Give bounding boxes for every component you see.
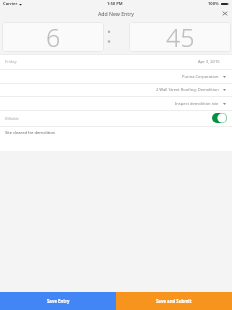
staticText: Friday <box>5 59 17 65</box>
button[interactable]: Purina Corporation <box>0 70 232 83</box>
staticText: Inspect demolition site <box>175 101 219 107</box>
button[interactable]: 45 <box>129 22 231 52</box>
button[interactable]: Billable <box>0 111 232 126</box>
staticText: 6 <box>46 22 61 50</box>
staticText: 45 <box>166 22 195 50</box>
button[interactable]: Save and Submit <box>116 292 232 310</box>
button[interactable]: Inspect demolition site <box>0 97 232 110</box>
button[interactable]: Site cleared for demolition <box>0 127 232 151</box>
button[interactable]: Close <box>220 11 230 21</box>
button[interactable]: 6 <box>2 22 104 52</box>
staticText: Save and Submit <box>156 298 192 304</box>
staticText: 1:50 PM <box>107 1 123 7</box>
staticText: Purina Corporation <box>182 74 219 80</box>
button[interactable]: Save Entry <box>0 292 116 310</box>
staticText: Apr 3, 2015 <box>198 59 220 65</box>
staticText: Add New Entry <box>98 10 134 17</box>
staticText: 100% <box>208 1 219 7</box>
staticText: Save Entry <box>47 298 70 304</box>
button[interactable]: Friday <box>0 55 232 69</box>
staticText: Carrier <box>3 1 18 7</box>
staticText: Billable <box>5 116 19 122</box>
button[interactable]: 2 Wall Street Roofing: Demolition <box>0 84 232 96</box>
staticText: Site cleared for demolition <box>5 130 56 136</box>
button[interactable]: Billable toggle <box>212 113 227 123</box>
staticText: 2 Wall Street Roofing: Demolition <box>156 87 219 93</box>
